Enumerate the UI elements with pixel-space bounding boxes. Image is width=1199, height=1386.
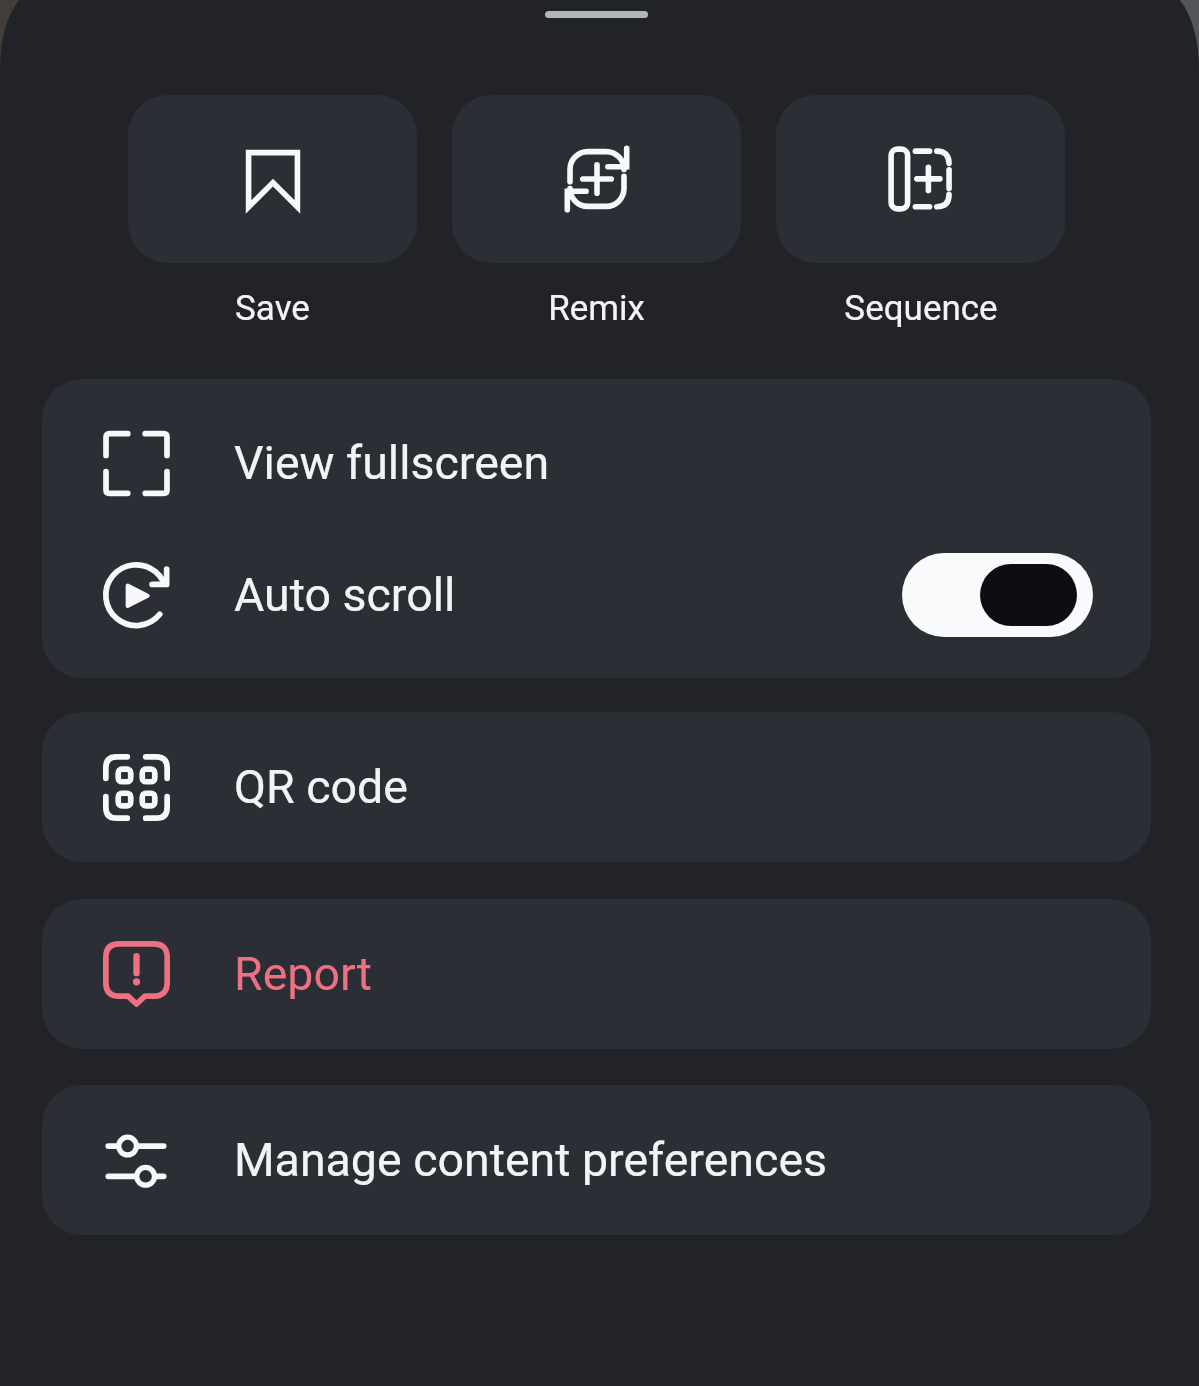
staticText: Report: [234, 947, 373, 1001]
staticText: Remix: [548, 288, 645, 329]
staticText: Auto scroll: [234, 568, 456, 622]
button[interactable]: Remix: [452, 95, 741, 329]
button[interactable]: Auto scroll: [42, 529, 1151, 661]
button[interactable]: Sequence: [776, 95, 1065, 329]
button[interactable]: Auto scroll, on: [902, 553, 1093, 637]
button[interactable]: Save: [128, 95, 417, 329]
button[interactable]: Report: [42, 899, 1151, 1049]
button[interactable]: Drag handle: [545, 11, 648, 18]
staticText: QR code: [234, 760, 408, 814]
button[interactable]: Manage content preferences: [42, 1085, 1151, 1235]
staticText: Save: [235, 288, 310, 329]
button[interactable]: QR code: [42, 712, 1151, 862]
button[interactable]: View fullscreen: [42, 397, 1151, 529]
staticText: Sequence: [844, 288, 998, 329]
staticText: Manage content preferences: [234, 1133, 828, 1187]
staticText: View fullscreen: [234, 436, 550, 490]
